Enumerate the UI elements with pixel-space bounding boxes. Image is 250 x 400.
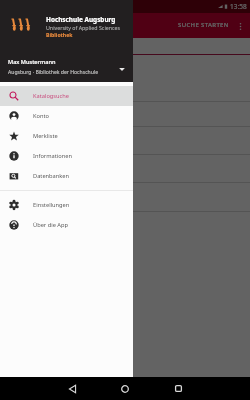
staticText: Augsburg · Bibliothek der Hochschule bbox=[8, 69, 99, 76]
button[interactable]: Max Mustermann bbox=[0, 58, 133, 82]
staticText: Hochschule Augsburg bbox=[46, 15, 116, 24]
staticText: Konto bbox=[33, 112, 49, 120]
button[interactable]: Einstellungen bbox=[0, 195, 133, 215]
button[interactable]: Über die App bbox=[0, 215, 133, 235]
button[interactable]: Konto bbox=[0, 106, 133, 126]
staticText: 13:58 bbox=[230, 2, 247, 11]
staticText: Informationen bbox=[33, 152, 72, 160]
button[interactable]: More options bbox=[233, 19, 247, 33]
button[interactable]: Home bbox=[115, 377, 135, 400]
staticText: Merkliste bbox=[33, 132, 58, 140]
staticText: Datenbanken bbox=[33, 172, 70, 180]
staticText: Einstellungen bbox=[33, 201, 70, 209]
button[interactable]: Datenbanken bbox=[0, 166, 133, 186]
staticText: SUCHE STARTEN bbox=[178, 21, 229, 29]
staticText: Bibliothek bbox=[46, 31, 73, 38]
button[interactable]: SUCHE STARTEN bbox=[174, 13, 233, 38]
button[interactable]: Back bbox=[62, 377, 82, 400]
button[interactable]: Recent apps bbox=[168, 377, 188, 400]
button[interactable]: Informationen bbox=[0, 146, 133, 166]
staticText: Über die App bbox=[33, 221, 68, 229]
staticText: University of Applied Sciences bbox=[46, 24, 121, 31]
button[interactable]: Open navigation drawer bbox=[6, 17, 24, 35]
button[interactable]: Merkliste bbox=[0, 126, 133, 146]
staticText: Max Mustermann bbox=[8, 58, 56, 66]
button[interactable]: Katalogsuche bbox=[0, 86, 133, 106]
staticText: Katalogsuche bbox=[33, 92, 70, 100]
